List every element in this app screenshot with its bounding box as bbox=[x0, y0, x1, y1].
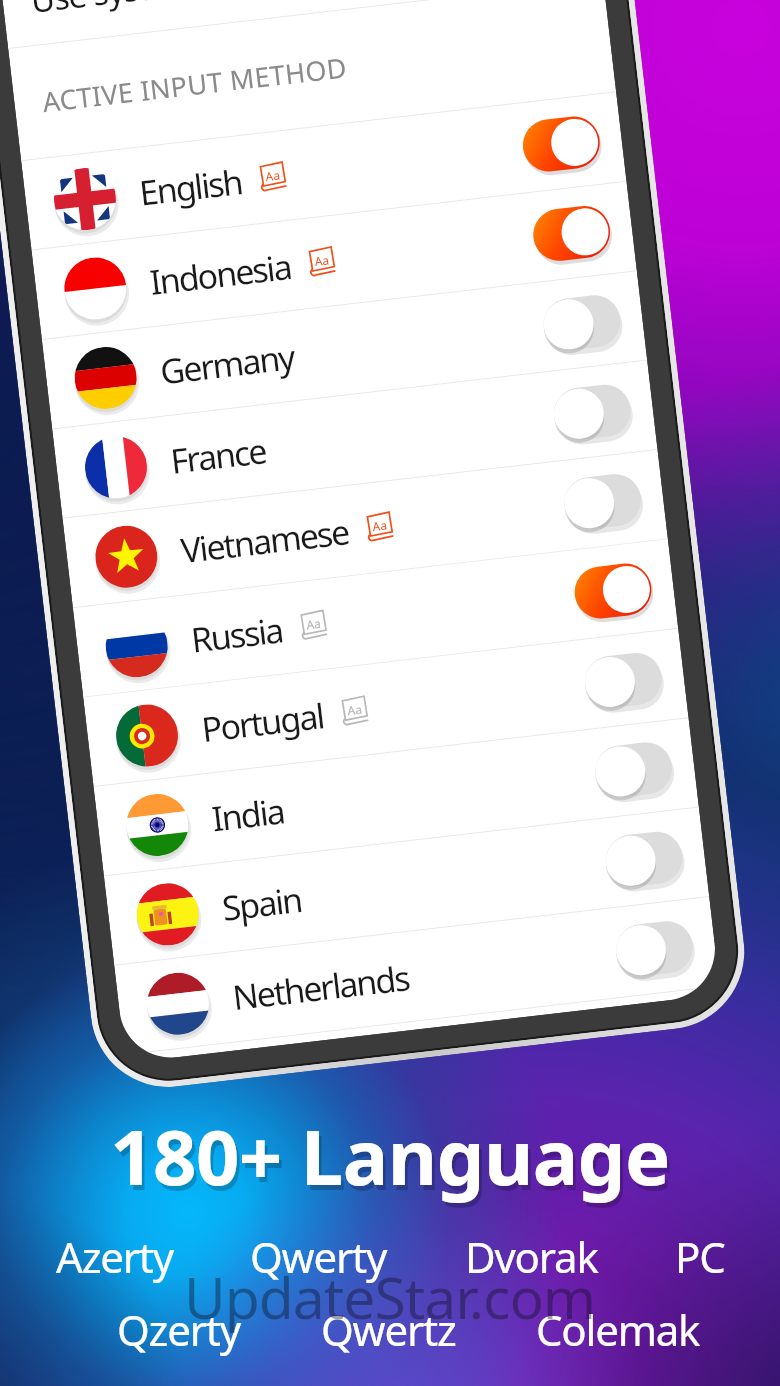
staticText: Germany bbox=[158, 333, 296, 394]
staticText: English bbox=[137, 158, 245, 216]
button[interactable]: Disabled bbox=[592, 740, 675, 800]
button[interactable]: Colemak bbox=[536, 1301, 700, 1358]
staticText: Aa bbox=[346, 701, 363, 718]
staticText: India bbox=[209, 787, 286, 841]
staticText: Indonesia bbox=[147, 243, 294, 305]
staticText: UpdateStar.com bbox=[184, 1258, 596, 1336]
button[interactable]: Portugal bbox=[83, 629, 688, 786]
staticText: Spain bbox=[220, 876, 303, 931]
button[interactable]: Qwerty bbox=[250, 1228, 387, 1285]
staticText: Netherlands bbox=[230, 954, 411, 1020]
button[interactable]: Enabled bbox=[530, 203, 613, 264]
button[interactable]: France bbox=[52, 361, 657, 518]
button[interactable]: Qwertz bbox=[321, 1301, 456, 1358]
button[interactable]: Enabled bbox=[520, 114, 603, 174]
button[interactable]: English bbox=[21, 92, 626, 250]
button[interactable]: Azerty bbox=[56, 1228, 173, 1285]
button[interactable]: Indonesia bbox=[31, 182, 637, 339]
button[interactable]: Netherlands bbox=[114, 897, 720, 1054]
button[interactable]: Disabled bbox=[541, 293, 623, 353]
button[interactable]: PC bbox=[675, 1228, 725, 1285]
button[interactable]: India bbox=[94, 718, 699, 875]
staticText: Aa bbox=[371, 517, 388, 534]
staticText: Use system language bbox=[28, 0, 340, 23]
staticText: 180+ Language bbox=[110, 1104, 670, 1208]
staticText: ACTIVE INPUT METHOD bbox=[40, 48, 349, 120]
staticText: Vietnamese bbox=[178, 508, 351, 573]
button[interactable]: Disabled bbox=[561, 471, 644, 532]
button[interactable]: Vietnamese bbox=[63, 450, 668, 607]
staticText: 180+ Language bbox=[113, 1109, 673, 1213]
button[interactable]: Disabled bbox=[582, 650, 665, 711]
button[interactable]: Disabled bbox=[603, 829, 685, 889]
button[interactable]: Germany bbox=[42, 271, 647, 428]
staticText: Aa bbox=[314, 251, 330, 269]
button[interactable]: Disabled bbox=[613, 918, 696, 979]
button[interactable]: Disabled bbox=[551, 382, 634, 442]
staticText: Aa bbox=[265, 166, 281, 184]
button[interactable]: Qzerty bbox=[117, 1301, 240, 1358]
staticText: Russia bbox=[189, 606, 285, 663]
staticText: France bbox=[168, 427, 269, 484]
button[interactable]: Spain bbox=[104, 808, 709, 965]
button[interactable]: Dvorak bbox=[465, 1228, 598, 1285]
staticText: Portugal bbox=[199, 692, 326, 752]
staticText: Aa bbox=[305, 615, 322, 632]
button[interactable]: Enabled bbox=[572, 561, 654, 621]
button[interactable]: Russia bbox=[73, 539, 678, 697]
